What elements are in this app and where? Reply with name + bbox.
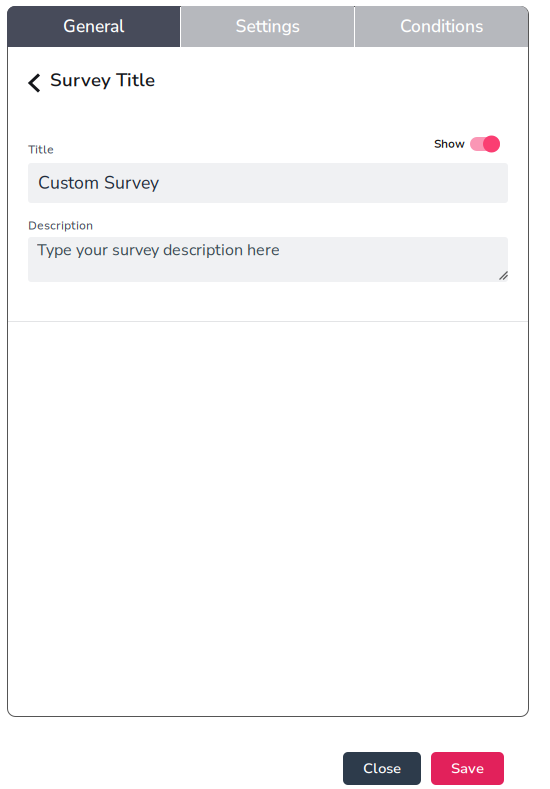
staticText: Show (434, 136, 465, 152)
button[interactable]: Description (28, 237, 508, 282)
button[interactable]: Conditions (355, 6, 528, 47)
button[interactable]: General (7, 6, 180, 47)
staticText: Description (28, 218, 93, 234)
staticText: Settings (235, 15, 299, 38)
button[interactable]: Settings (181, 6, 354, 47)
staticText: Conditions (400, 15, 483, 38)
staticText: Save (451, 758, 484, 778)
button[interactable]: Back to Survey Title (30, 60, 230, 100)
staticText: Survey Title (50, 67, 155, 93)
button[interactable]: Close (343, 752, 421, 785)
staticText: Type your survey description here (37, 239, 280, 261)
staticText: Custom Survey (38, 171, 159, 195)
button[interactable]: Show survey toggle, on (434, 135, 500, 153)
staticText: General (63, 15, 124, 38)
button[interactable]: Title, Custom Survey (28, 163, 508, 203)
staticText: Close (363, 758, 401, 778)
button[interactable]: Save (431, 752, 504, 785)
staticText: Title (28, 142, 54, 158)
